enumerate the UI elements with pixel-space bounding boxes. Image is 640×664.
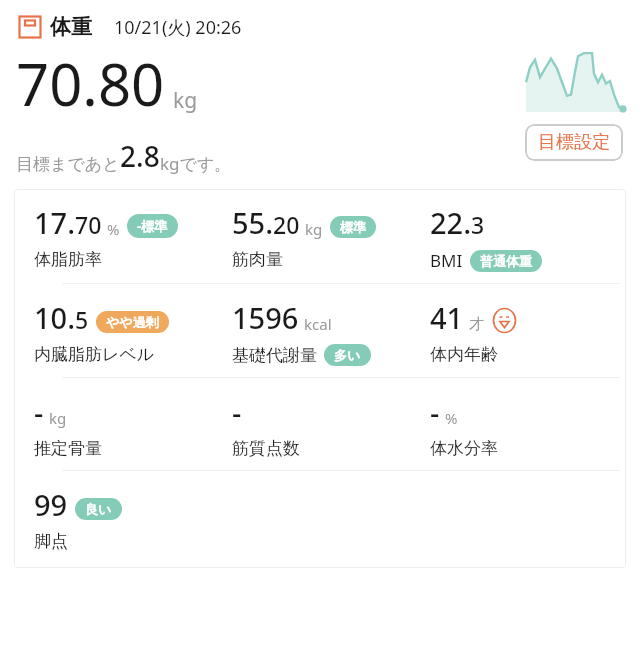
staticText: kgです。 — [160, 152, 232, 175]
staticText: 体水分率 — [430, 438, 498, 459]
button[interactable]: 41 — [430, 298, 618, 365]
staticText: - — [34, 392, 44, 431]
staticText: 内臓脂肪レベル — [34, 344, 155, 365]
button[interactable]: 普通体重 — [470, 250, 542, 272]
button[interactable]: 55.20 — [232, 203, 430, 270]
staticText: 筋肉量 — [232, 249, 283, 270]
staticText: 推定骨量 — [34, 438, 102, 459]
staticText: 体重 — [50, 14, 92, 40]
staticText: 体脂肪率 — [34, 249, 102, 270]
staticText: 目標設定 — [538, 131, 610, 154]
staticText: 41 — [430, 298, 464, 337]
staticText: 良い — [85, 501, 112, 517]
staticText: 脚点 — [34, 531, 68, 552]
button[interactable]: - — [232, 392, 430, 459]
button[interactable]: 22.3 — [430, 203, 618, 272]
button[interactable]: -標準 — [127, 214, 178, 238]
button[interactable]: - — [430, 392, 618, 459]
other: Body age mood — [491, 307, 518, 334]
staticText: kg — [49, 408, 67, 428]
staticText: kcal — [304, 314, 332, 334]
staticText: 体内年齢 — [430, 344, 498, 365]
button[interactable]: 1596 — [232, 298, 430, 366]
staticText: 70.80 — [16, 44, 165, 123]
staticText: やや過剰 — [106, 314, 159, 330]
staticText: 目標まであと — [16, 154, 120, 175]
staticText: 筋質点数 — [232, 438, 300, 459]
staticText: -標準 — [137, 217, 168, 235]
staticText: % — [107, 219, 120, 239]
button[interactable]: 17.70 — [34, 203, 232, 270]
button[interactable]: やや過剰 — [96, 311, 169, 333]
staticText: kg — [305, 219, 323, 239]
staticText: 22.3 — [430, 203, 485, 242]
staticText: kg — [173, 86, 198, 115]
staticText: 標準 — [340, 219, 366, 235]
staticText: - — [430, 392, 440, 431]
staticText: 普通体重 — [480, 253, 532, 269]
staticText: 10.5 — [34, 298, 89, 337]
other: Weight scale — [18, 15, 42, 39]
button[interactable]: - — [34, 392, 232, 459]
button[interactable]: 標準 — [330, 216, 376, 238]
staticText: 17.70 — [34, 203, 102, 242]
staticText: BMI — [430, 249, 463, 272]
button[interactable]: 多い — [324, 344, 371, 366]
staticText: 55.20 — [232, 203, 300, 242]
staticText: 99 — [34, 485, 68, 524]
staticText: 1596 — [232, 298, 299, 337]
staticText: 基礎代謝量 — [232, 345, 317, 366]
staticText: 才 — [469, 315, 484, 334]
staticText: - — [232, 392, 242, 431]
staticText: 多い — [334, 347, 361, 363]
button[interactable]: 99 — [34, 485, 232, 552]
staticText: 10/21(火) 20:26 — [114, 15, 242, 40]
button[interactable]: 良い — [75, 498, 122, 520]
button[interactable]: 目標設定 — [525, 124, 623, 161]
button[interactable]: 10.5 — [34, 298, 232, 365]
other: Weight trend chart — [524, 50, 624, 112]
staticText: 2.8 — [120, 137, 160, 175]
staticText: % — [445, 408, 458, 428]
